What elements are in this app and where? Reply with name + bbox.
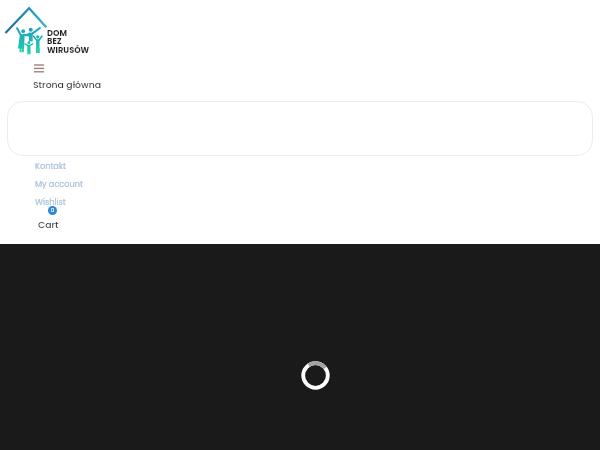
button[interactable]: My account	[35, 178, 84, 189]
button[interactable]: DOM	[0, 0, 100, 56]
button[interactable]: Kontakt	[35, 160, 67, 171]
staticText: WIRUSÓW	[47, 44, 90, 55]
staticText: 0	[51, 207, 55, 214]
button[interactable]: Wishlist	[35, 196, 66, 207]
button[interactable]	[7, 101, 593, 156]
button[interactable]: Menu	[30, 58, 48, 74]
staticText: DOM	[47, 27, 67, 38]
button[interactable]: Cart	[38, 218, 59, 231]
staticText: BEZ	[47, 35, 62, 46]
button[interactable]: Strona główna	[33, 78, 102, 91]
